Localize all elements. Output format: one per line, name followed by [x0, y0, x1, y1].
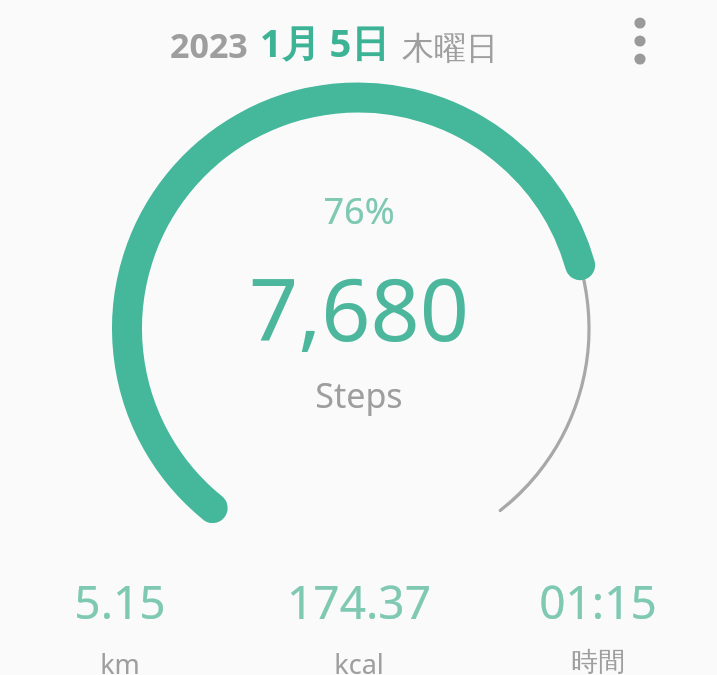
button[interactable]: 2023	[168, 14, 500, 70]
staticText: 174.37	[287, 570, 431, 633]
button[interactable]: More options	[614, 2, 666, 80]
staticText: km	[100, 645, 140, 675]
button[interactable]: 174.37	[239, 566, 478, 675]
button[interactable]: 01:15	[478, 566, 717, 675]
staticText: 時間	[571, 645, 625, 675]
staticText: 1月 5日	[260, 16, 390, 68]
staticText: 木曜日	[402, 28, 498, 68]
staticText: 76%	[323, 186, 395, 235]
staticText: 2023	[170, 22, 248, 68]
staticText: 01:15	[539, 570, 657, 633]
staticText: 7,680	[249, 249, 469, 366]
staticText: 5.15	[74, 570, 166, 633]
staticText: kcal	[334, 645, 384, 675]
button[interactable]: 76%	[0, 186, 717, 418]
button[interactable]: 5.15	[0, 566, 239, 675]
staticText: Steps	[315, 372, 403, 418]
